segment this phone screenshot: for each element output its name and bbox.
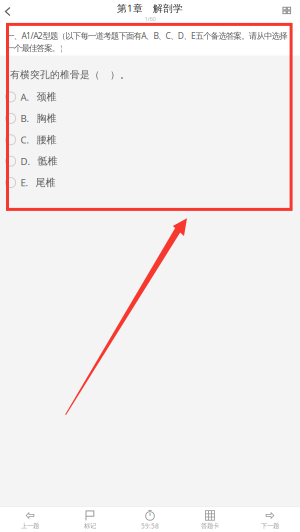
staticText: 标记 (84, 522, 96, 530)
staticText: 上一题 (21, 522, 39, 530)
staticText: D. (21, 155, 31, 168)
button[interactable]: 标记 (60, 507, 120, 532)
button[interactable]: C. (0, 129, 300, 150)
button[interactable]: E. (0, 172, 300, 193)
staticText: 尾椎 (36, 176, 56, 189)
button[interactable]: Back (0, 0, 15, 23)
button[interactable]: 答题卡 (180, 507, 240, 532)
button[interactable]: 上一题 (0, 507, 60, 532)
staticText: 有横突孔的椎骨是（ ）。 (10, 68, 130, 81)
staticText: 颈椎 (37, 91, 57, 103)
button[interactable]: Answer sheet (273, 0, 300, 24)
staticText: B. (21, 112, 30, 125)
staticText: 答题卡 (201, 522, 219, 530)
staticText: A. (21, 90, 30, 103)
button[interactable]: B. (0, 108, 300, 129)
button[interactable]: D. (0, 150, 300, 172)
staticText: 第1章 解剖学 (117, 1, 183, 15)
staticText: 腰椎 (37, 133, 57, 146)
staticText: 1/60 (144, 15, 155, 23)
staticText: E. (21, 176, 29, 189)
button[interactable]: 59:58 (120, 507, 180, 532)
button[interactable]: 下一题 (240, 507, 300, 532)
staticText: 下一题 (261, 522, 279, 530)
staticText: 胸椎 (37, 112, 57, 125)
staticText: C. (21, 133, 30, 146)
staticText: 骶椎 (38, 155, 58, 168)
staticText: 59:58 (141, 522, 159, 530)
staticText: 一、A1/A2型题（以下每一道考题下面有A、B、C、D、E五个备选答案。请从中选… (6, 30, 287, 53)
button[interactable]: A. (0, 86, 300, 108)
